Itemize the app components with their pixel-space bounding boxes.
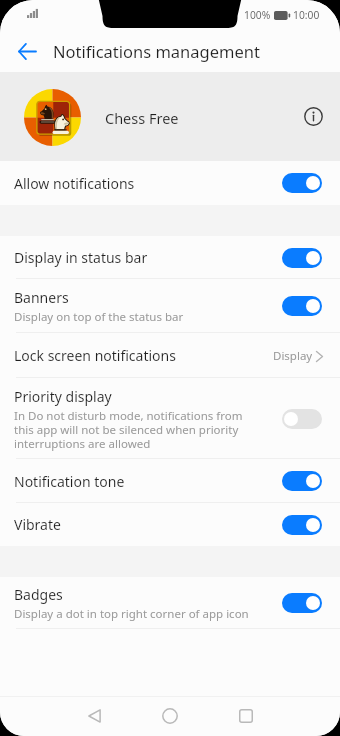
button[interactable]: Back xyxy=(78,700,110,732)
button[interactable]: Home xyxy=(154,700,186,732)
staticText: Banners xyxy=(14,288,69,307)
button[interactable]: Toggle on xyxy=(282,515,322,535)
button[interactable]: Toggle on xyxy=(282,471,322,491)
button[interactable]: Toggle off xyxy=(282,409,322,429)
button[interactable]: Allow notifications xyxy=(0,161,340,205)
staticText: In Do not disturb mode, notifications fr… xyxy=(14,408,256,451)
button[interactable]: Toggle on xyxy=(282,296,322,316)
staticText: Notification tone xyxy=(14,472,125,491)
button[interactable]: App info xyxy=(298,101,329,132)
staticText: Lock screen notifications xyxy=(14,346,176,365)
button[interactable]: Priority display xyxy=(0,378,340,459)
button[interactable]: Display in status bar xyxy=(0,236,340,279)
button[interactable]: Back xyxy=(10,35,43,68)
button[interactable]: Recents xyxy=(230,700,262,732)
staticText: Chess Free xyxy=(105,108,179,128)
button[interactable]: Vibrate xyxy=(0,503,340,546)
staticText: Display in status bar xyxy=(14,248,148,267)
staticText: Badges xyxy=(14,585,63,604)
button[interactable]: Notification tone xyxy=(0,459,340,503)
staticText: 10:00 xyxy=(293,8,320,22)
staticText: Display on top of the status bar xyxy=(14,309,184,325)
staticText: Display a dot in top right corner of app… xyxy=(14,606,249,622)
staticText: 100% xyxy=(244,8,271,22)
staticText: Notifications management xyxy=(53,40,260,62)
button[interactable]: Toggle on xyxy=(282,593,322,613)
staticText: Priority display xyxy=(14,387,112,406)
button[interactable]: Banners xyxy=(0,279,340,333)
staticText: Display xyxy=(273,348,313,364)
staticText: Vibrate xyxy=(14,515,61,534)
staticText: Allow notifications xyxy=(14,174,135,193)
button[interactable]: Lock screen notifications xyxy=(0,333,340,378)
button[interactable]: Badges xyxy=(0,577,340,629)
button[interactable]: Toggle on xyxy=(282,173,322,193)
button[interactable]: Toggle on xyxy=(282,248,322,268)
